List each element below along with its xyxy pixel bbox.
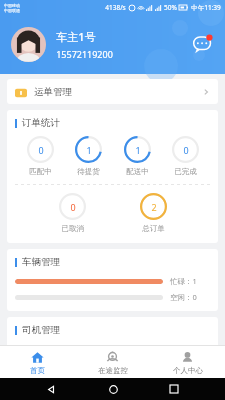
staticText: 忙碌：1 [170, 276, 197, 286]
button[interactable]: 0 [49, 193, 95, 233]
button[interactable]: 在途监控 [75, 348, 150, 377]
button[interactable]: Back [40, 378, 62, 400]
button[interactable]: 2 [130, 193, 176, 233]
staticText: 空闲：0 [170, 292, 197, 302]
staticText: 4138/s [105, 3, 126, 12]
staticText: 1 [86, 144, 92, 156]
staticText: 中国联通 [4, 8, 20, 13]
staticText: 已取消 [61, 224, 84, 233]
staticText: 0 [38, 144, 44, 156]
staticText: 运单管理 [34, 86, 72, 98]
staticText: 待提货 [77, 167, 100, 176]
staticText: 50% [164, 3, 177, 12]
staticText: 匹配中 [29, 167, 52, 176]
button[interactable]: 空闲：0 [15, 292, 210, 302]
staticText: 1 [135, 144, 141, 156]
button[interactable]: Profile photo [11, 27, 46, 62]
button[interactable]: 1 [114, 136, 160, 176]
staticText: 总订单 [142, 224, 165, 233]
button[interactable]: 运单管理 [7, 79, 218, 104]
staticText: 2 [151, 201, 157, 213]
staticText: 15572119200 [56, 48, 113, 60]
staticText: 配送中 [126, 167, 149, 176]
staticText: 中国移动 [4, 3, 20, 8]
staticText: 在途监控 [98, 366, 128, 375]
button[interactable]: 个人中心 [150, 348, 225, 377]
button[interactable]: 0 [162, 136, 208, 176]
button[interactable]: Home [102, 378, 124, 400]
button[interactable]: Messages [189, 31, 216, 58]
staticText: 首页 [30, 366, 45, 375]
button[interactable]: Recents [163, 378, 185, 400]
staticText: 司机管理 [22, 324, 60, 336]
button[interactable]: 0 [17, 136, 63, 176]
staticText: 0 [70, 201, 76, 213]
staticText: 中午11:39 [191, 3, 221, 12]
button[interactable]: 忙碌：1 [15, 276, 210, 286]
button[interactable]: 首页 [0, 348, 75, 377]
staticText: 0 [183, 144, 189, 156]
button[interactable]: 1 [65, 136, 111, 176]
button[interactable]: 车主1号 [56, 29, 189, 60]
staticText: 已完成 [174, 167, 197, 176]
staticText: 车主1号 [56, 29, 96, 44]
staticText: 车辆管理 [22, 256, 60, 268]
staticText: 订单统计 [22, 117, 60, 129]
staticText: 个人中心 [173, 366, 203, 375]
